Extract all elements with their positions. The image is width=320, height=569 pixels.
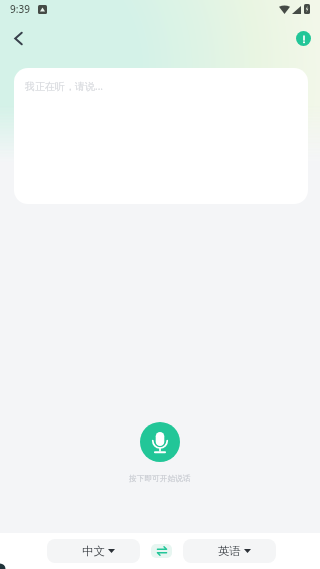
button[interactable]: Swap languages (151, 544, 172, 558)
button[interactable]: Start recording (140, 422, 180, 462)
staticText: 英语 (218, 544, 241, 558)
staticText: 我正在听，请说... (25, 79, 104, 93)
button[interactable]: 英语 (183, 539, 276, 563)
staticText: 9:39 (10, 2, 30, 16)
button[interactable]: Info (289, 24, 317, 52)
button[interactable]: Back (2, 22, 34, 54)
staticText: 中文 (82, 544, 105, 558)
staticText: 按下即可开始说话 (129, 474, 191, 484)
button[interactable]: 中文 (47, 539, 140, 563)
